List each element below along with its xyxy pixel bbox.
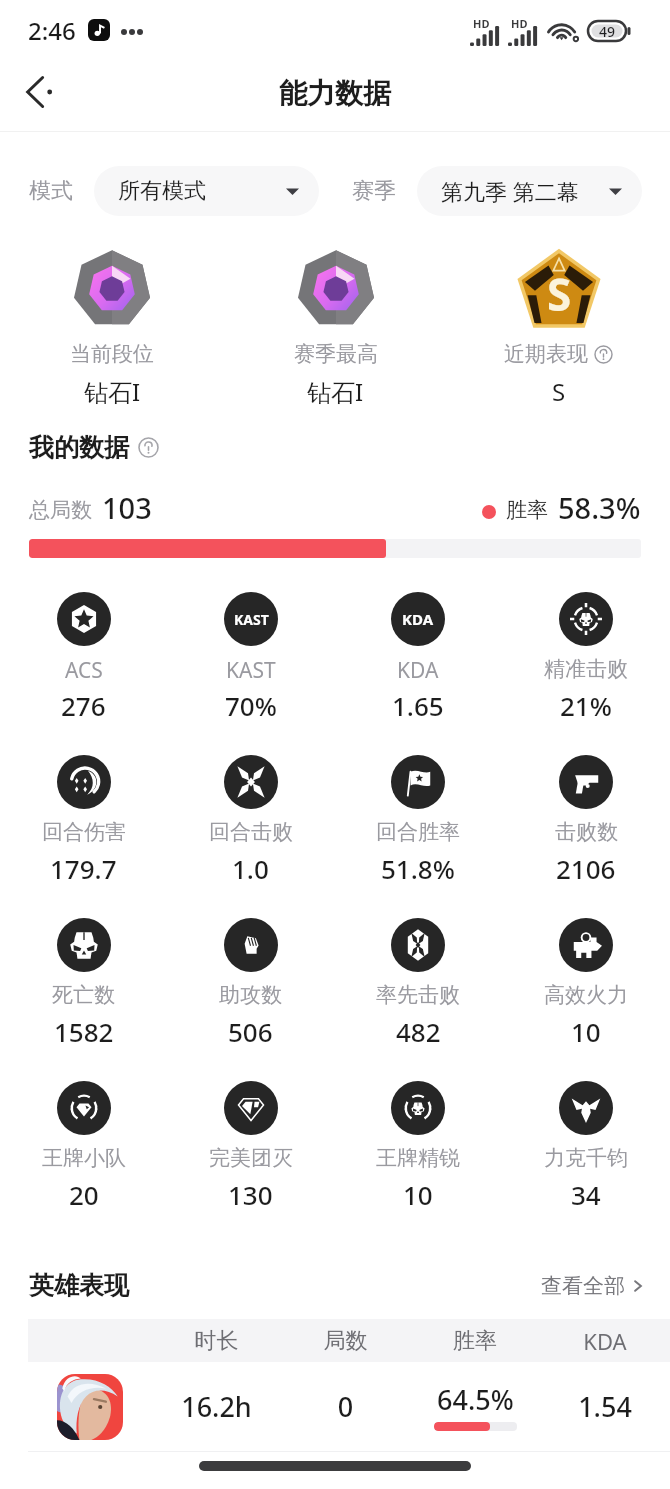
staticText: 1.54 (540, 1388, 670, 1425)
staticText: 赛季最高 (294, 341, 378, 367)
staticText: ACS (65, 656, 103, 685)
staticText: 64.5% (437, 1381, 514, 1418)
button[interactable]: 率先击败 (334, 918, 502, 1048)
staticText: 近期表现 (504, 341, 588, 367)
staticText: 1.0 (232, 851, 269, 886)
staticText: KDA (540, 1326, 670, 1356)
button[interactable]: Back (12, 64, 68, 120)
staticText: 506 (228, 1014, 273, 1049)
staticText: 58.3% (558, 488, 641, 527)
button[interactable]: 王牌小队 (0, 1081, 167, 1211)
staticText: KAST (234, 610, 269, 629)
staticText: 0 (281, 1388, 410, 1425)
staticText: 查看全部 (541, 1273, 625, 1299)
staticText: 51.8% (381, 851, 455, 886)
staticText: 王牌精锐 (376, 1145, 460, 1171)
staticText: KAST (226, 656, 276, 685)
staticText: 王牌小队 (42, 1145, 126, 1171)
button[interactable]: 死亡数 (0, 918, 167, 1048)
staticText: 回合胜率 (376, 819, 460, 845)
staticText: 赛季 (352, 177, 396, 205)
staticText: 10 (403, 1177, 433, 1212)
staticText: 10 (571, 1014, 601, 1049)
staticText: 70% (225, 688, 277, 723)
staticText: 模式 (29, 177, 73, 205)
staticText: 34 (571, 1177, 601, 1212)
button[interactable]: 击败数 (502, 755, 670, 885)
staticText: 1582 (54, 1014, 114, 1049)
staticText: 高效火力 (544, 982, 628, 1008)
staticText: HD (511, 16, 528, 31)
button[interactable]: 回合击败 (167, 755, 334, 885)
button[interactable]: 力克千钧 (502, 1081, 670, 1211)
button[interactable]: 完美团灭 (167, 1081, 334, 1211)
staticText: 20 (69, 1177, 99, 1212)
staticText: 胜率 (506, 497, 548, 523)
staticText: 力克千钧 (544, 1145, 628, 1171)
staticText: S (547, 264, 572, 324)
staticText: S (552, 375, 566, 408)
button[interactable]: ACS (0, 592, 167, 722)
staticText: 276 (61, 688, 106, 723)
staticText: 130 (228, 1177, 273, 1212)
staticText: 总局数 (29, 497, 92, 523)
staticText: 当前段位 (70, 341, 154, 367)
staticText: 助攻数 (219, 982, 282, 1008)
staticText: 我的数据 (29, 432, 129, 463)
staticText: 49 (599, 22, 616, 41)
staticText: 179.7 (50, 851, 117, 886)
staticText: 钻石I (307, 375, 364, 408)
staticText: 回合击败 (209, 819, 293, 845)
staticText: 钻石I (84, 375, 141, 408)
staticText: 率先击败 (376, 982, 460, 1008)
staticText: 482 (396, 1014, 441, 1049)
staticText: 胜率 (410, 1327, 540, 1355)
staticText: 16.2h (152, 1388, 281, 1425)
staticText: KDA (402, 609, 434, 629)
staticText: 第九季 第二幕 (441, 176, 579, 206)
staticText: 1.65 (392, 688, 444, 723)
button[interactable]: 回合胜率 (334, 755, 502, 885)
button[interactable]: 查看全部 (541, 1273, 646, 1299)
button[interactable]: 王牌精锐 (334, 1081, 502, 1211)
staticText: 完美团灭 (209, 1145, 293, 1171)
staticText: 回合伤害 (42, 819, 126, 845)
staticText: 2:46 (28, 14, 76, 47)
staticText: 能力数据 (279, 76, 391, 111)
staticText: 局数 (281, 1327, 410, 1355)
button[interactable]: 回合伤害 (0, 755, 167, 885)
button[interactable]: 所有模式 (94, 166, 319, 216)
staticText: 103 (102, 488, 152, 527)
button[interactable]: KDA (334, 592, 502, 722)
staticText: 精准击败 (544, 656, 628, 682)
button[interactable]: 助攻数 (167, 918, 334, 1048)
staticText: 21% (560, 688, 612, 723)
button[interactable]: 高效火力 (502, 918, 670, 1048)
staticText: 击败数 (555, 819, 618, 845)
button[interactable]: 16.2h (28, 1362, 670, 1451)
staticText: 死亡数 (52, 982, 115, 1008)
staticText: 时长 (152, 1327, 281, 1355)
button[interactable]: 精准击败 (502, 592, 670, 722)
staticText: KDA (397, 656, 439, 685)
staticText: 英雄表现 (29, 1270, 129, 1301)
staticText: HD (473, 16, 490, 31)
staticText: 2106 (556, 851, 616, 886)
button[interactable]: 第九季 第二幕 (417, 166, 642, 216)
staticText: 所有模式 (118, 177, 206, 205)
button[interactable]: KAST (167, 592, 334, 722)
